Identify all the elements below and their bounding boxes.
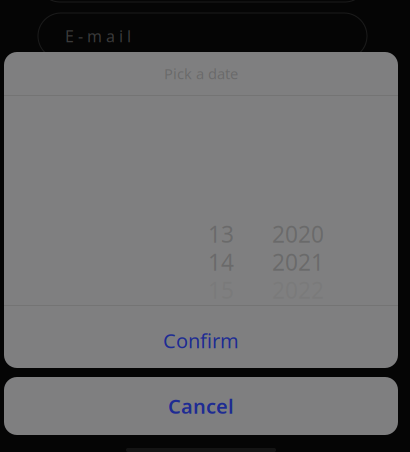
- staticText: Pick a date: [164, 64, 238, 83]
- staticText: 2021: [272, 247, 324, 277]
- staticText: E - m a i l: [65, 25, 131, 47]
- staticText: Cancel: [168, 393, 234, 419]
- staticText: 14: [208, 247, 234, 277]
- staticText: Confirm: [163, 327, 239, 354]
- button[interactable]: Confirm: [4, 306, 398, 368]
- staticText: 13: [208, 219, 234, 249]
- staticText: 2020: [272, 219, 324, 249]
- button[interactable]: Cancel: [4, 377, 398, 435]
